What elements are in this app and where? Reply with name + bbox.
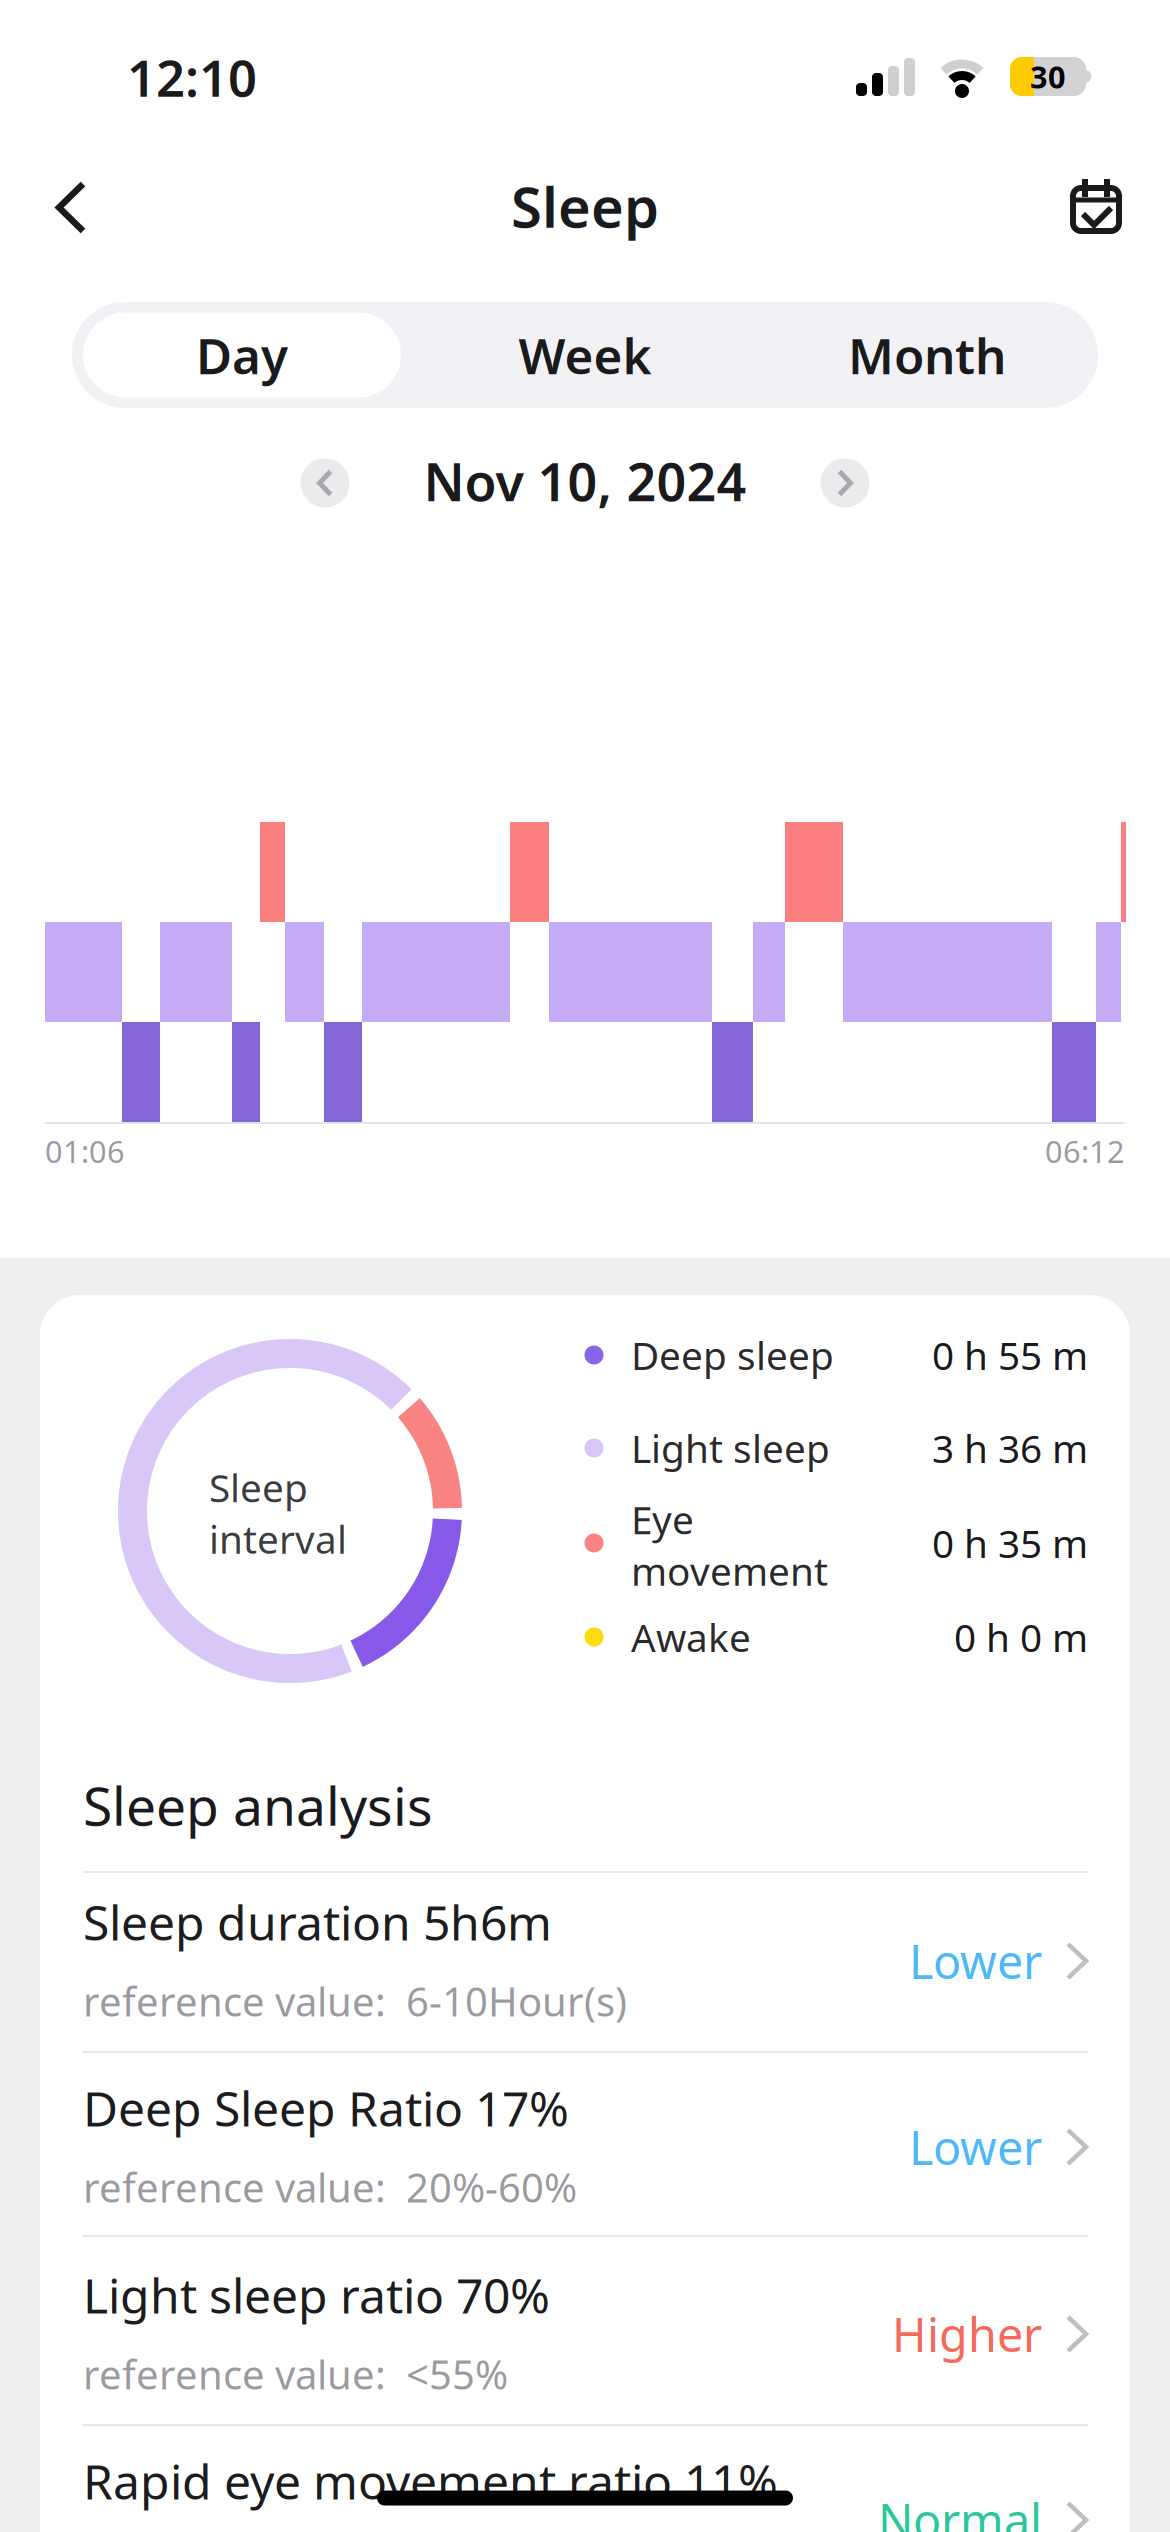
staticText: Sleep analysis (83, 1770, 433, 1840)
staticText: 06:12 (1045, 1131, 1125, 1171)
staticText: Awake (631, 1611, 751, 1663)
button[interactable]: Week (426, 312, 744, 397)
staticText: Month (848, 322, 1006, 388)
staticText: Day (196, 322, 288, 388)
staticText: Lower (909, 2116, 1042, 2178)
staticText: 30 (1030, 56, 1066, 97)
staticText: reference value: <55% (83, 2347, 508, 2400)
staticText: Deep sleep (631, 1329, 834, 1381)
staticText: Sleep duration 5h6m (83, 1890, 552, 1954)
button[interactable]: Light sleep ratio 70% (83, 2240, 1088, 2424)
staticText: Rapid eye movement ratio 11% (83, 2449, 778, 2513)
staticText: Eye movement (631, 1494, 828, 1596)
staticText: 3 h 36 m (932, 1422, 1088, 1474)
staticText: Deep Sleep Ratio 17% (83, 2076, 569, 2140)
staticText: Light sleep (631, 1422, 830, 1474)
staticText: 0 h 0 m (954, 1611, 1088, 1663)
staticText: reference value: 6-10Hour(s) (83, 1974, 627, 2027)
staticText: Light sleep ratio 70% (83, 2263, 550, 2327)
staticText: Nov 10, 2024 (423, 446, 746, 516)
staticText: Sleep (511, 169, 659, 243)
staticText: Higher (892, 2303, 1042, 2365)
staticText: Lower (909, 1930, 1042, 1992)
staticText: 0 h 55 m (932, 1329, 1088, 1381)
staticText: Sleep interval (209, 1462, 347, 1564)
staticText: Week (518, 322, 651, 388)
staticText: 0 h 35 m (932, 1517, 1088, 1569)
button[interactable] (1065, 174, 1127, 238)
staticText: reference value: 20%-60% (83, 2160, 577, 2213)
button[interactable]: Day (83, 312, 401, 397)
staticText: 01:06 (45, 1131, 125, 1171)
button[interactable] (820, 458, 869, 507)
staticText: Normal (878, 2489, 1042, 2532)
button[interactable]: Rapid eye movement ratio 11% (83, 2426, 1088, 2532)
button[interactable]: Deep Sleep Ratio 17% (83, 2053, 1088, 2237)
staticText: 12:10 (127, 43, 257, 111)
button[interactable] (48, 179, 94, 236)
button[interactable]: Month (768, 312, 1086, 397)
button[interactable]: Sleep duration 5h6m (83, 1867, 1088, 2051)
button[interactable] (300, 458, 349, 507)
